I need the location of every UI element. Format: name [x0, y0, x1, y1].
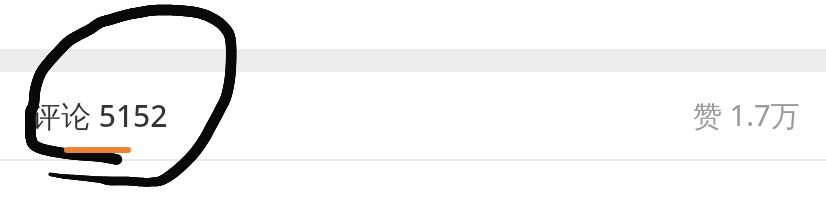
button[interactable]: 赞 1.7万 — [670, 85, 820, 147]
button[interactable]: 评论 5152 — [10, 85, 190, 157]
staticText: 赞 1.7万 — [693, 95, 800, 135]
staticText: 评论 5152 — [31, 95, 168, 136]
